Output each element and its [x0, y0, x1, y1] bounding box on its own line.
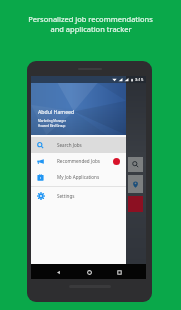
- button[interactable]: Recommended Jobs: [31, 153, 126, 169]
- button[interactable]: Home: [83, 266, 95, 278]
- staticText: My Job Applications: [57, 174, 100, 180]
- button[interactable]: Search Jobs: [31, 137, 126, 153]
- staticText: Howard Bird Group: [38, 124, 66, 128]
- staticText: Settings: [57, 193, 75, 199]
- staticText: and application tracker: [50, 24, 132, 34]
- staticText: Abdul Hameed: [38, 108, 75, 115]
- staticText: Personalized job recommendations: [28, 14, 153, 24]
- button[interactable]: Settings: [31, 188, 126, 204]
- staticText: Marketing Manager: [38, 119, 66, 123]
- button[interactable]: Back: [52, 266, 64, 278]
- staticText: Recommended Jobs: [57, 158, 100, 164]
- button[interactable]: Recents: [113, 266, 125, 278]
- staticText: 3:15: [135, 77, 144, 83]
- button[interactable]: My Job Applications: [31, 169, 126, 185]
- staticText: Search Jobs: [57, 142, 82, 148]
